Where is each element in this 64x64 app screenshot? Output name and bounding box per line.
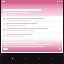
button[interactable]: Saved [37, 53, 41, 63]
button[interactable]: Explore [23, 53, 27, 63]
button[interactable] [2, 17, 62, 21]
button[interactable] [3, 48, 8, 50]
button[interactable]: Home [10, 53, 14, 63]
button[interactable]: More options [59, 3, 62, 6]
button[interactable] [2, 22, 62, 26]
button[interactable] [2, 27, 62, 32]
button[interactable]: Back [2, 3, 5, 6]
button[interactable]: Search [56, 3, 59, 6]
button[interactable]: Profile [50, 53, 54, 63]
button[interactable] [2, 33, 62, 38]
button[interactable]: Favorite [59, 48, 61, 50]
button[interactable]: Favorite [2, 40, 62, 52]
